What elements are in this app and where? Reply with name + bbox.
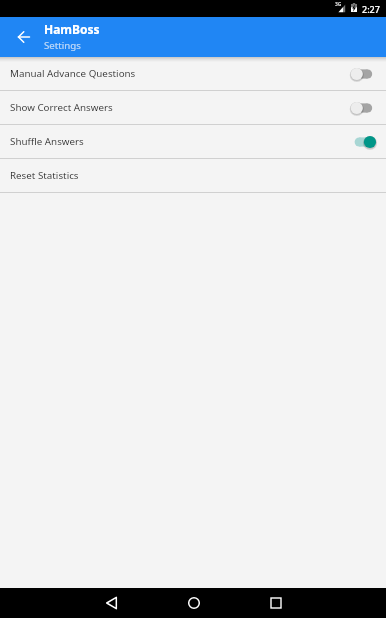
staticText: 3G	[335, 1, 342, 8]
button[interactable]: On	[346, 132, 372, 152]
button[interactable]: Show Correct Answers	[0, 91, 386, 124]
button[interactable]: Back	[11, 24, 36, 49]
staticText: HamBoss	[44, 21, 100, 37]
button[interactable]: Off	[346, 64, 372, 84]
button[interactable]: Reset Statistics	[0, 159, 386, 192]
staticText: 2:27	[362, 3, 380, 15]
button[interactable]: Back	[96, 588, 128, 618]
button[interactable]: Manual Advance Questions	[0, 57, 386, 90]
staticText: Shuffle Answers	[10, 135, 84, 148]
button[interactable]: Recent apps	[260, 588, 292, 618]
staticText: Settings	[44, 39, 81, 52]
button[interactable]: Home	[178, 588, 210, 618]
staticText: Reset Statistics	[10, 169, 79, 182]
button[interactable]: Shuffle Answers	[0, 125, 386, 158]
staticText: Show Correct Answers	[10, 101, 113, 114]
button[interactable]: Off	[346, 98, 372, 118]
staticText: Manual Advance Questions	[10, 67, 136, 80]
